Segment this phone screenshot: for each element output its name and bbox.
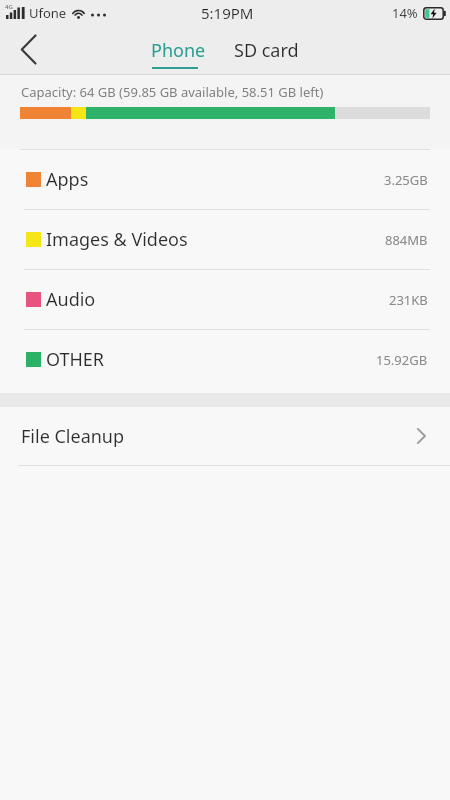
staticText: 3.25GB [384, 171, 428, 189]
staticText: SD card [234, 38, 299, 63]
staticText: Ufone [29, 4, 67, 22]
button[interactable]: Phone [135, 25, 221, 75]
staticText: 14% [392, 4, 418, 22]
button[interactable] [0, 25, 57, 75]
staticText: Phone [151, 38, 206, 63]
staticText: Images & Videos [46, 227, 188, 252]
staticText: Apps [46, 167, 89, 192]
staticText: File Cleanup [21, 424, 125, 449]
button[interactable]: OTHER [0, 330, 450, 389]
staticText: Capacity: 64 GB (59.85 GB available, 58.… [21, 83, 324, 101]
staticText: OTHER [46, 347, 105, 372]
button[interactable]: File Cleanup [0, 407, 450, 465]
staticText: 884MB [385, 231, 428, 249]
staticText: 5:19PM [201, 3, 254, 23]
button[interactable]: SD card [221, 25, 311, 75]
staticText: 231KB [389, 291, 428, 309]
button[interactable]: Apps [0, 150, 450, 209]
staticText: 4G [5, 3, 13, 11]
staticText: 15.92GB [376, 351, 428, 369]
button[interactable]: Images & Videos [0, 210, 450, 269]
button[interactable]: Audio [0, 270, 450, 329]
staticText: Audio [46, 287, 96, 312]
